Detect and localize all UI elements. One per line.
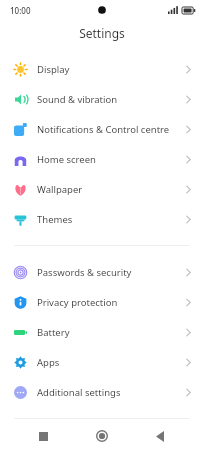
staticText: Additional settings: [37, 386, 186, 399]
staticText: Battery: [37, 326, 186, 339]
button[interactable]: Sound & vibration: [0, 84, 203, 114]
staticText: Settings: [79, 25, 125, 41]
staticText: Notifications & Control centre: [37, 123, 186, 136]
button[interactable]: Themes: [0, 204, 203, 234]
button[interactable]: Notifications & Control centre: [0, 114, 203, 144]
button[interactable]: Battery: [0, 317, 203, 347]
staticText: Privacy protection: [37, 296, 186, 309]
staticText: Apps: [37, 356, 186, 369]
button[interactable]: Home: [87, 421, 117, 451]
button[interactable]: Apps: [0, 347, 203, 377]
button[interactable]: Privacy protection: [0, 287, 203, 317]
staticText: Wallpaper: [37, 183, 186, 196]
staticText: Sound & vibration: [37, 93, 186, 106]
button[interactable]: Home screen: [0, 144, 203, 174]
staticText: Home screen: [37, 153, 186, 166]
button[interactable]: Back: [145, 421, 175, 451]
button[interactable]: Display: [0, 54, 203, 84]
staticText: 10:00: [10, 5, 31, 16]
button[interactable]: Wallpaper: [0, 174, 203, 204]
button[interactable]: Additional settings: [0, 377, 203, 407]
button[interactable]: Recents: [28, 421, 58, 451]
button[interactable]: Passwords & security: [0, 257, 203, 287]
staticText: Passwords & security: [37, 266, 186, 279]
staticText: Themes: [37, 213, 186, 226]
staticText: Display: [37, 63, 186, 76]
